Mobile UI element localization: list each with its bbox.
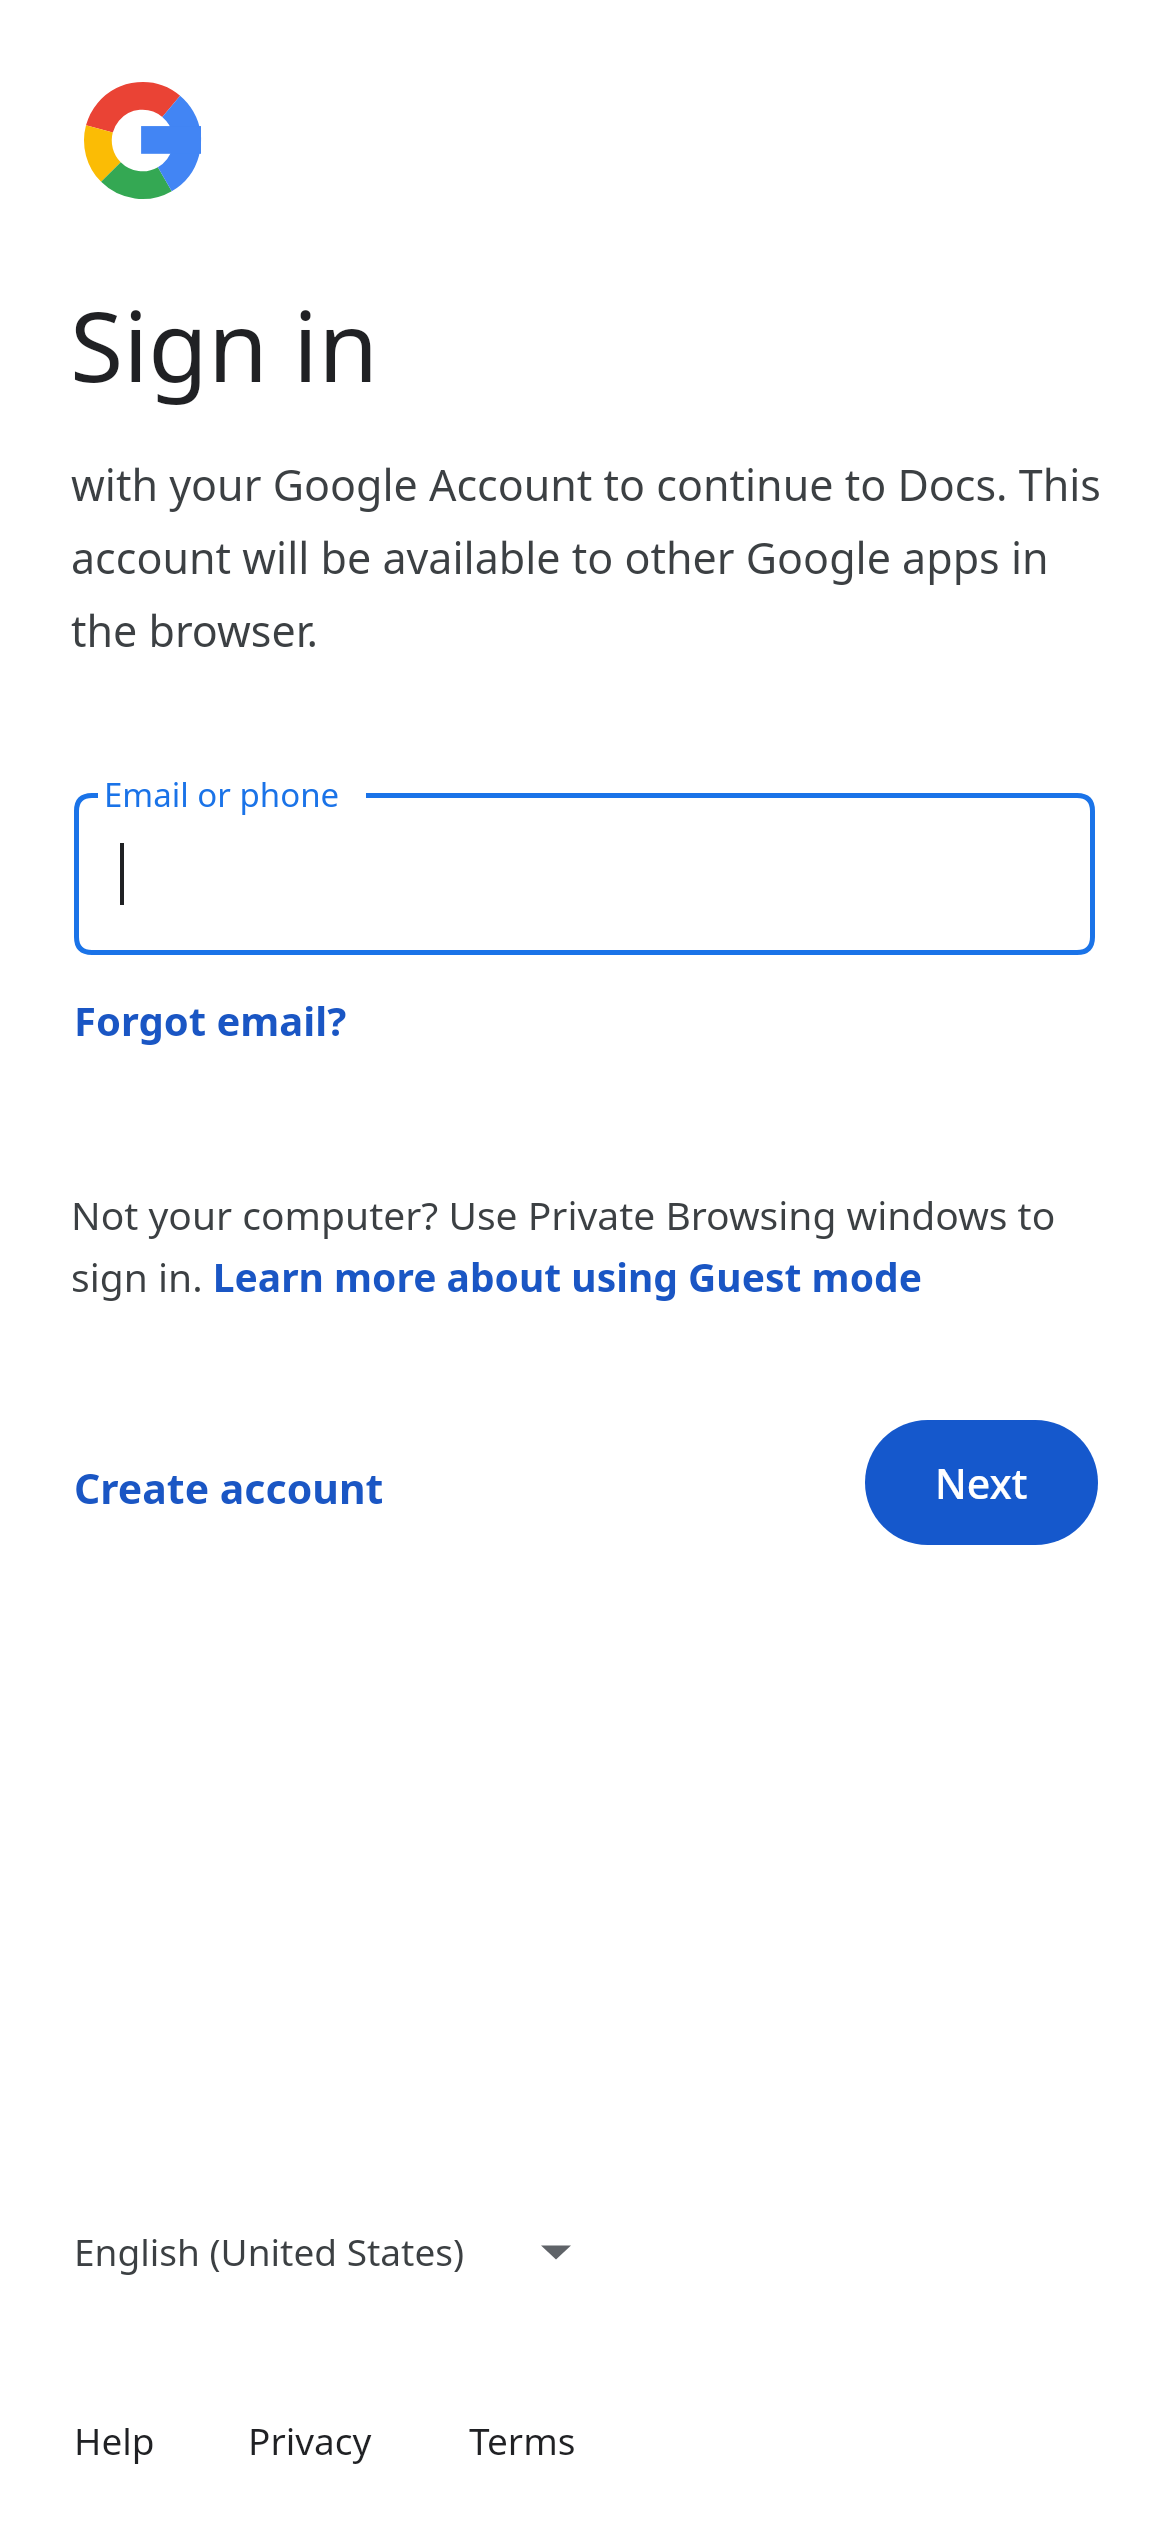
staticText: Not your computer? Use Private Browsing … (71, 1188, 1116, 1303)
button[interactable]: Help (74, 2415, 248, 2465)
other: Change language (541, 2241, 571, 2261)
button[interactable]: Privacy (248, 2415, 469, 2465)
staticText: Forgot email? (74, 993, 347, 1047)
staticText: with your Google Account to continue to … (71, 455, 1111, 660)
staticText: English (United States) (74, 2226, 465, 2276)
button[interactable]: Forgot email? (74, 993, 347, 1047)
button[interactable]: Not your computer? Use Private Browsing … (71, 1188, 1116, 1303)
staticText: Next (935, 1455, 1028, 1511)
button[interactable]: English (United States) (74, 2226, 571, 2276)
button[interactable]: Next (865, 1420, 1098, 1545)
button[interactable]: Terms (469, 2415, 576, 2465)
button[interactable]: Create account (74, 1460, 384, 1516)
staticText: Terms (469, 2415, 576, 2465)
staticText: Help (74, 2415, 155, 2465)
staticText: Create account (74, 1460, 384, 1516)
staticText: Privacy (248, 2415, 372, 2465)
button[interactable] (74, 793, 1095, 955)
staticText: Sign in (70, 278, 379, 410)
staticText: Email or phone (104, 772, 340, 817)
